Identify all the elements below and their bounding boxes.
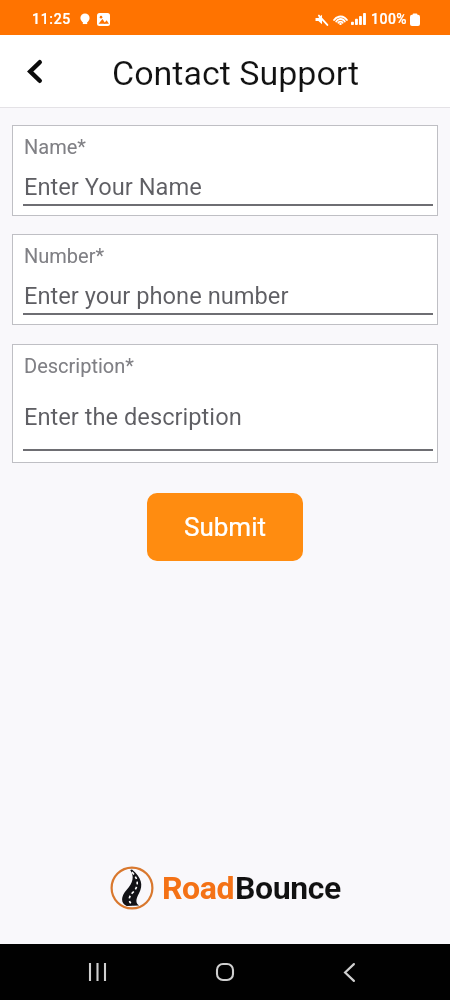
button[interactable]: Recent apps	[70, 944, 125, 1000]
staticText: Number*	[24, 244, 105, 267]
button[interactable]: Home	[197, 944, 253, 1000]
button[interactable]: Description*	[12, 344, 438, 463]
button[interactable]: Submit	[147, 493, 303, 561]
staticText: 11:25	[32, 11, 72, 27]
button[interactable]: Name*	[12, 125, 438, 216]
button[interactable]: Back	[322, 944, 377, 1000]
button[interactable]: Back	[12, 48, 58, 94]
staticText: Bounce	[235, 869, 341, 907]
staticText: Name*	[24, 135, 86, 158]
staticText: Enter your phone number	[24, 282, 289, 310]
staticText: Road	[162, 869, 235, 907]
staticText: Contact Support	[112, 53, 360, 93]
staticText: Enter Your Name	[24, 173, 202, 201]
staticText: 100%	[371, 11, 408, 27]
button[interactable]: Number*	[12, 234, 438, 325]
staticText: Description*	[24, 354, 134, 377]
staticText: Submit	[184, 512, 266, 542]
staticText: Enter the description	[24, 403, 242, 431]
